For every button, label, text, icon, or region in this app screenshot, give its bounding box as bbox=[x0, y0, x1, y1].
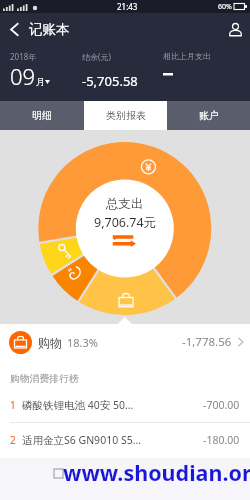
staticText: 18.3% bbox=[67, 335, 98, 350]
staticText: 账户 bbox=[199, 109, 219, 122]
button[interactable]: Back bbox=[0, 13, 29, 46]
staticText: 适用金立S6 GN9010 S5... bbox=[22, 433, 199, 447]
staticText: 9,706.74元 bbox=[94, 214, 157, 231]
staticText: 购物消费排行榜 bbox=[10, 373, 79, 385]
staticText: 相比上月支出 bbox=[163, 51, 211, 61]
staticText: 21:43 bbox=[117, 1, 138, 12]
staticText: 磷酸铁锂电池 40安 50... bbox=[22, 398, 199, 412]
button[interactable]: 类别报表 bbox=[84, 101, 167, 130]
staticText: 购物 bbox=[38, 335, 62, 350]
staticText: -700.00 bbox=[203, 398, 240, 412]
staticText: 记账本 bbox=[29, 21, 70, 38]
staticText: -1,778.56 bbox=[182, 334, 232, 350]
button[interactable]: 明细 bbox=[0, 101, 84, 130]
button[interactable]: 2018年 bbox=[10, 51, 50, 92]
staticText: 总支出 bbox=[106, 196, 144, 212]
button[interactable]: 购物 bbox=[0, 324, 250, 360]
staticText: 明细 bbox=[32, 109, 52, 122]
button[interactable]: Profile bbox=[220, 13, 250, 46]
staticText: 类别报表 bbox=[106, 109, 146, 122]
staticText: 结余(元) bbox=[82, 51, 111, 62]
staticText: 2 bbox=[10, 433, 16, 447]
button[interactable]: 2 bbox=[0, 423, 250, 457]
staticText: 1 bbox=[10, 398, 16, 412]
staticText: 60% bbox=[218, 2, 232, 12]
button[interactable]: 1 bbox=[0, 388, 250, 422]
button[interactable]: 账户 bbox=[167, 101, 250, 130]
staticText: www.shoudian.org bbox=[63, 458, 250, 487]
staticText: -5,705.58 bbox=[82, 72, 138, 90]
staticText: 月 bbox=[36, 76, 45, 87]
staticText: -180.00 bbox=[203, 433, 240, 447]
staticText: 09 bbox=[10, 61, 36, 91]
staticText: 2018年 bbox=[10, 51, 37, 62]
